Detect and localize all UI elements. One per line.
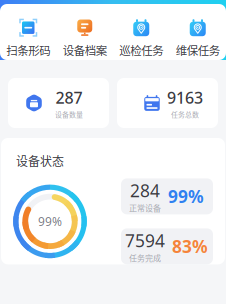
button[interactable]: 284: [121, 178, 213, 214]
staticText: 设备档案: [63, 42, 107, 58]
staticText: 设备数量: [55, 109, 83, 119]
staticText: 99%: [168, 185, 204, 208]
button[interactable]: 维保任务: [169, 19, 226, 58]
button[interactable]: 设备档案: [56, 19, 113, 58]
button[interactable]: 9163: [117, 78, 218, 128]
staticText: 正常设备: [129, 202, 161, 214]
staticText: 扫条形码: [6, 42, 50, 58]
button[interactable]: 扫条形码: [0, 19, 56, 58]
button[interactable]: 287: [8, 78, 109, 128]
staticText: 维保任务: [176, 42, 220, 58]
staticText: 284: [130, 179, 160, 202]
staticText: 9163: [167, 87, 203, 108]
staticText: 83%: [172, 235, 208, 258]
staticText: 99%: [38, 213, 62, 229]
staticText: 巡检任务: [119, 42, 163, 58]
staticText: 任务完成: [129, 252, 161, 264]
staticText: 设备状态: [16, 152, 64, 169]
button[interactable]: 巡检任务: [113, 19, 169, 58]
staticText: 7594: [125, 229, 165, 252]
staticText: 任务总数: [171, 109, 199, 119]
staticText: 287: [55, 87, 82, 108]
button[interactable]: 7594: [121, 228, 213, 264]
